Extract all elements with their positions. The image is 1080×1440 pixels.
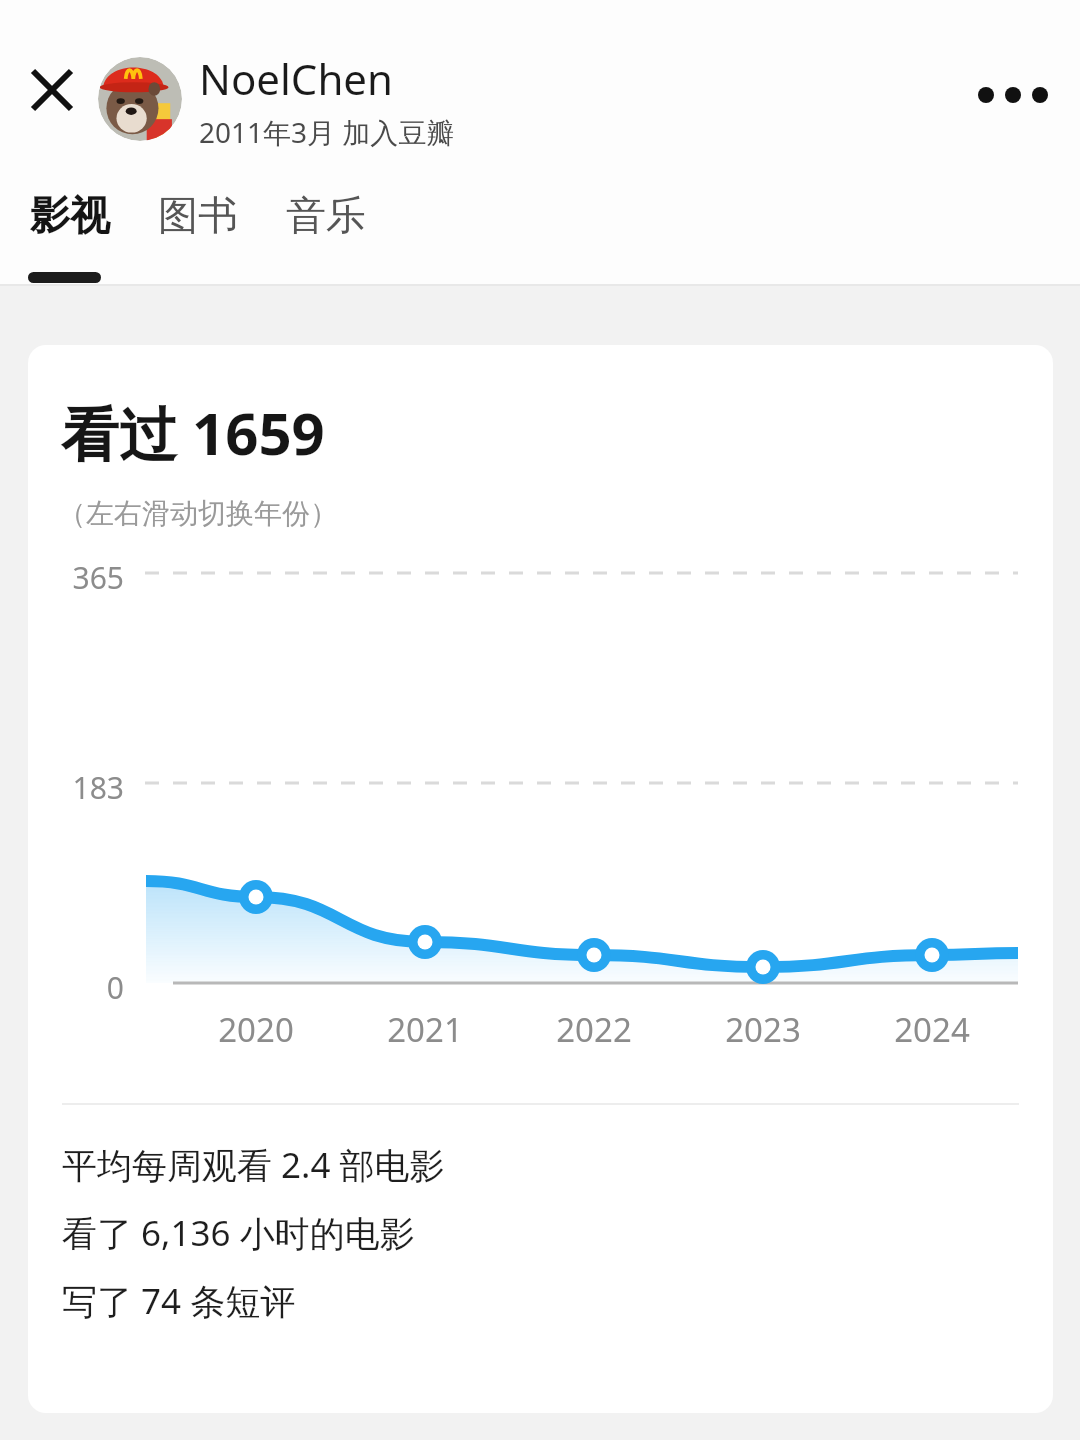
staticText: （左右滑动切换年份） — [58, 496, 338, 531]
staticText: 0 — [52, 967, 124, 1008]
staticText: 音乐 — [286, 190, 366, 240]
staticText: NoelChen — [199, 50, 393, 107]
button[interactable]: 音乐 — [284, 186, 368, 244]
staticText: 2021 — [365, 1007, 485, 1052]
staticText: 2023 — [703, 1007, 823, 1052]
button[interactable]: 平均每周观看 2.4 部电影 — [62, 1141, 445, 1189]
staticText: 图书 — [158, 190, 238, 240]
button[interactable]: Yearly watch chart — [28, 555, 1053, 1095]
staticText: 2024 — [872, 1007, 992, 1052]
button[interactable]: 影视 — [28, 186, 112, 244]
button[interactable]: Close — [12, 50, 92, 130]
button[interactable]: More options — [970, 52, 1056, 138]
staticText: 2020 — [196, 1007, 316, 1052]
staticText: 365 — [52, 557, 124, 598]
button[interactable]: Avatar — [98, 57, 182, 141]
button[interactable]: 看了 6,136 小时的电影 — [62, 1209, 415, 1257]
staticText: 2011年3月 加入豆瓣 — [199, 113, 455, 151]
button[interactable]: NoelChen — [199, 50, 455, 151]
staticText: 183 — [52, 767, 124, 808]
button[interactable]: 图书 — [156, 186, 240, 244]
staticText: 影视 — [30, 190, 110, 240]
staticText: 看过 1659 — [61, 393, 325, 472]
staticText: 2022 — [534, 1007, 654, 1052]
button[interactable]: 写了 74 条短评 — [62, 1277, 296, 1325]
